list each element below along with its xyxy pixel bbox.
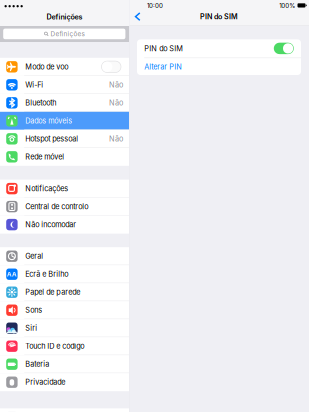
staticText: Alterar PIN xyxy=(144,62,182,71)
staticText: 10:00 xyxy=(147,2,163,9)
button[interactable]: Não incomodar xyxy=(0,216,129,234)
button[interactable]: Hotspot pessoal xyxy=(0,130,129,148)
staticText: Bateria xyxy=(25,360,49,369)
staticText: Notificações xyxy=(25,184,68,193)
button[interactable]: AA xyxy=(0,265,129,283)
button[interactable]: Rede móvel xyxy=(0,148,129,166)
button[interactable]: Wi-Fi xyxy=(0,76,129,94)
staticText: Wi-Fi xyxy=(25,80,43,89)
button[interactable]: Siri xyxy=(0,319,129,337)
staticText: Siri xyxy=(25,324,37,333)
button[interactable]: Touch ID e código xyxy=(0,337,129,355)
staticText: Não incomodar xyxy=(25,220,76,229)
staticText: Definições xyxy=(46,13,82,21)
staticText: Bluetooth xyxy=(25,98,56,107)
staticText: AA xyxy=(7,270,17,278)
button[interactable]: Notificações xyxy=(0,180,129,198)
staticText: Privacidade xyxy=(25,378,65,387)
button[interactable]: Bluetooth xyxy=(0,94,129,112)
button[interactable]: Papel de parede xyxy=(0,283,129,301)
button[interactable]: Privacidade xyxy=(0,373,129,391)
staticText: Não xyxy=(109,80,123,89)
staticText: Geral xyxy=(25,252,43,261)
button[interactable]: Bateria xyxy=(0,355,129,373)
staticText: Sons xyxy=(25,306,42,315)
staticText: Hotspot pessoal xyxy=(25,134,78,143)
staticText: Ecrã e Brilho xyxy=(25,270,68,279)
staticText: Não xyxy=(109,134,123,143)
staticText: Central de controlo xyxy=(25,202,88,211)
button[interactable]: Back xyxy=(130,9,146,25)
staticText: PIN do SIM xyxy=(200,12,238,21)
button[interactable]: Definições xyxy=(3,29,125,39)
staticText: Dados móveis xyxy=(25,116,72,125)
button[interactable]: Central de controlo xyxy=(0,198,129,216)
staticText: Definições xyxy=(50,30,84,38)
button[interactable]: Dados móveis xyxy=(0,112,129,130)
button[interactable]: Geral xyxy=(0,247,129,265)
staticText: Papel de parede xyxy=(25,288,80,297)
staticText: Rede móvel xyxy=(25,152,64,161)
staticText: Touch ID e código xyxy=(25,342,84,351)
button[interactable]: Alterar PIN xyxy=(144,58,294,75)
staticText: Modo de voo xyxy=(25,62,68,71)
staticText: Não xyxy=(109,98,123,107)
staticText: 100% xyxy=(279,2,295,9)
button[interactable]: Sons xyxy=(0,301,129,319)
button[interactable]: Modo de voo xyxy=(0,58,129,76)
staticText: PIN do SIM xyxy=(144,44,183,53)
